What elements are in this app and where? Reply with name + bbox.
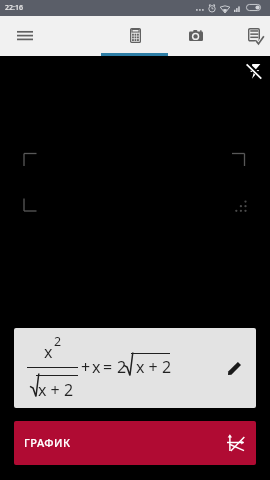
staticText: ГРАФИК (24, 435, 71, 450)
button[interactable]: Calculator (101, 16, 168, 56)
staticText: x + 2 (38, 379, 74, 401)
button[interactable]: Edit (222, 356, 246, 380)
staticText: x (44, 341, 53, 363)
button[interactable]: Solutions (233, 16, 270, 56)
staticText: x (92, 356, 101, 378)
button[interactable]: ГРАФИК (14, 421, 256, 465)
staticText: 22:16 (5, 3, 23, 13)
button[interactable]: Flash off (241, 59, 265, 83)
button[interactable]: Camera (168, 16, 224, 56)
staticText: = (103, 356, 113, 378)
staticText: 2 (54, 333, 62, 350)
staticText: x + 2 (136, 356, 172, 378)
staticText: 2 (117, 356, 127, 378)
staticText: + (81, 356, 91, 378)
button[interactable]: Menu (0, 16, 50, 56)
button[interactable]: x (14, 328, 256, 408)
